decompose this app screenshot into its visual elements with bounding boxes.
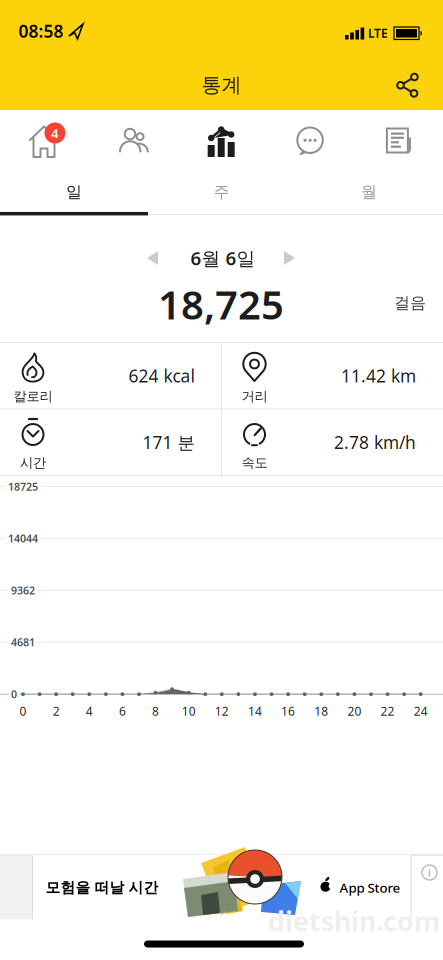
button[interactable]: Ad information: [415, 858, 443, 887]
staticText: 2.78 km/h: [334, 431, 416, 454]
staticText: 24: [414, 703, 428, 719]
staticText: 171 분: [142, 431, 194, 454]
staticText: 20: [347, 703, 361, 719]
staticText: 주: [213, 182, 229, 202]
staticText: 11.42 km: [341, 364, 416, 387]
button[interactable]: Previous day: [131, 236, 175, 280]
button[interactable]: Share: [375, 55, 435, 115]
staticText: 0: [11, 687, 17, 701]
staticText: 통계: [201, 73, 241, 97]
staticText: 6월 6일: [190, 246, 255, 270]
button[interactable]: 주: [148, 170, 295, 214]
button[interactable]: News: [354, 110, 443, 172]
staticText: 9362: [11, 583, 35, 597]
staticText: 18,725: [158, 277, 284, 330]
staticText: App Store: [339, 879, 400, 896]
staticText: 0: [19, 703, 26, 719]
button[interactable]: Community: [89, 110, 177, 172]
button[interactable]: Next day: [267, 236, 311, 280]
staticText: 10: [182, 703, 196, 719]
staticText: 08:58: [18, 19, 63, 42]
staticText: 칼로리: [13, 388, 52, 404]
staticText: 8: [152, 703, 159, 719]
staticText: 2: [53, 703, 60, 719]
button[interactable]: 일: [0, 170, 148, 214]
button[interactable]: 월: [295, 170, 443, 214]
staticText: 시간: [20, 454, 46, 471]
staticText: 4681: [11, 635, 35, 649]
staticText: 18725: [8, 479, 38, 494]
staticText: 22: [380, 703, 394, 719]
staticText: 14044: [8, 531, 38, 545]
staticText: 16: [281, 703, 295, 719]
staticText: 4: [51, 124, 59, 142]
staticText: 12: [215, 703, 229, 719]
staticText: 4: [86, 703, 93, 719]
staticText: 624 kcal: [128, 364, 194, 387]
button[interactable]: Messages: [266, 110, 354, 172]
staticText: 18: [314, 703, 328, 719]
staticText: 14: [248, 703, 262, 719]
staticText: LTE: [368, 25, 388, 41]
staticText: 속도: [241, 454, 267, 471]
staticText: i: [428, 865, 431, 880]
staticText: dietshin.com: [268, 903, 440, 939]
staticText: 거리: [241, 388, 267, 404]
staticText: 걸음: [394, 293, 426, 313]
button[interactable]: Advertisement: 모험을 떠날 시간 – App Store: [33, 855, 411, 920]
staticText: 6: [119, 703, 126, 719]
staticText: 월: [361, 182, 377, 202]
button[interactable]: Home: [0, 110, 89, 172]
staticText: 일: [66, 182, 82, 202]
staticText: 모험을 떠날 시간: [45, 878, 158, 896]
button[interactable]: Statistics: [177, 110, 266, 172]
